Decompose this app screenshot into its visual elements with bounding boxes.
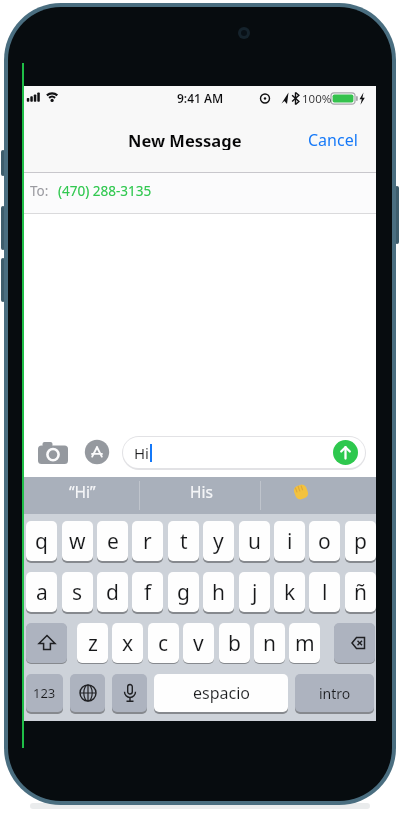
button[interactable]: e xyxy=(97,521,128,561)
button[interactable]: g xyxy=(168,572,199,612)
button[interactable]: y xyxy=(203,521,234,561)
staticText: d xyxy=(106,578,119,607)
staticText: m xyxy=(295,629,315,658)
button[interactable] xyxy=(112,674,147,712)
button[interactable]: New Message xyxy=(115,129,255,150)
button[interactable]: w xyxy=(62,521,93,561)
staticText: a xyxy=(36,578,48,607)
staticText: Hi xyxy=(134,443,149,462)
staticText: z xyxy=(88,629,98,658)
button[interactable]: u xyxy=(239,521,270,561)
button[interactable]: intro xyxy=(295,674,374,712)
staticText: r xyxy=(143,527,152,556)
staticText: k xyxy=(284,578,296,607)
staticText: e xyxy=(107,527,119,556)
button[interactable]: i xyxy=(274,521,305,561)
button[interactable]: b xyxy=(219,623,250,663)
button[interactable]: “Hi” xyxy=(34,480,130,502)
staticText: 100% xyxy=(302,91,332,106)
button[interactable] xyxy=(289,479,313,503)
staticText: w xyxy=(69,527,86,556)
button[interactable]: (470) 288-3135 xyxy=(53,182,157,200)
staticText: To: xyxy=(30,182,49,200)
staticText: h xyxy=(212,578,225,607)
staticText: j xyxy=(252,578,258,607)
button[interactable]: q xyxy=(26,521,57,561)
staticText: b xyxy=(228,629,241,658)
button[interactable] xyxy=(122,436,366,470)
button[interactable]: f xyxy=(132,572,163,612)
staticText: y xyxy=(213,527,224,556)
button[interactable]: His xyxy=(153,480,249,502)
staticText: 9:41 AM xyxy=(177,90,224,106)
staticText: x xyxy=(122,629,134,658)
button[interactable]: k xyxy=(274,572,305,612)
button[interactable]: s xyxy=(62,572,93,612)
staticText: Cancel xyxy=(308,129,358,150)
staticText: ñ xyxy=(354,578,367,607)
staticText: n xyxy=(263,629,276,658)
button[interactable] xyxy=(26,623,67,663)
staticText: q xyxy=(35,527,48,556)
button[interactable] xyxy=(333,440,358,465)
button[interactable]: m xyxy=(289,623,320,663)
button[interactable]: n xyxy=(254,623,285,663)
staticText: intro xyxy=(319,684,351,703)
staticText: His xyxy=(190,481,213,502)
button[interactable]: p xyxy=(345,521,376,561)
button[interactable]: 123 xyxy=(26,674,63,712)
staticText: c xyxy=(158,629,169,658)
button[interactable]: espacio xyxy=(154,674,288,712)
button[interactable]: t xyxy=(168,521,199,561)
button[interactable] xyxy=(70,674,105,712)
staticText: 123 xyxy=(33,684,56,702)
button[interactable]: Cancel xyxy=(305,129,361,150)
staticText: f xyxy=(144,578,152,607)
staticText: v xyxy=(193,629,204,658)
staticText: l xyxy=(322,578,328,607)
staticText: u xyxy=(248,527,261,556)
button[interactable]: a xyxy=(26,572,57,612)
button[interactable]: ñ xyxy=(345,572,376,612)
staticText: espacio xyxy=(193,682,250,704)
staticText: o xyxy=(318,527,331,556)
button[interactable]: x xyxy=(112,623,143,663)
button[interactable]: j xyxy=(239,572,270,612)
staticText: p xyxy=(354,527,367,556)
staticText: New Message xyxy=(128,129,242,150)
button[interactable]: h xyxy=(203,572,234,612)
button[interactable]: v xyxy=(183,623,214,663)
staticText: (470) 288-3135 xyxy=(58,182,152,200)
button[interactable]: l xyxy=(309,572,340,612)
button[interactable] xyxy=(34,438,74,468)
staticText: s xyxy=(72,578,83,607)
button[interactable] xyxy=(84,439,110,465)
button[interactable]: o xyxy=(309,521,340,561)
button[interactable]: d xyxy=(97,572,128,612)
staticText: g xyxy=(177,578,190,607)
staticText: i xyxy=(287,527,293,556)
button[interactable]: z xyxy=(77,623,108,663)
staticText: t xyxy=(180,527,188,556)
staticText: “Hi” xyxy=(69,481,96,502)
button[interactable]: c xyxy=(148,623,179,663)
button[interactable]: r xyxy=(132,521,163,561)
button[interactable] xyxy=(334,623,375,663)
